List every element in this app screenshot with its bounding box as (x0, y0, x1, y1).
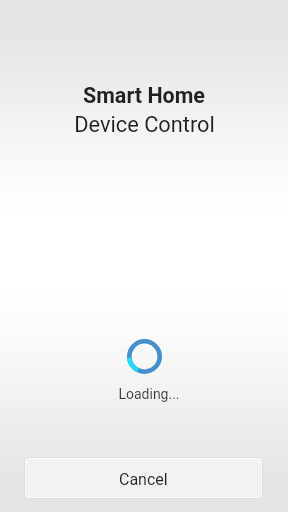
staticText: Smart Home (83, 83, 205, 108)
staticText: Cancel (119, 470, 168, 489)
button[interactable]: Cancel (24, 457, 263, 499)
staticText: Loading... (118, 386, 180, 402)
staticText: Device Control (74, 112, 215, 138)
